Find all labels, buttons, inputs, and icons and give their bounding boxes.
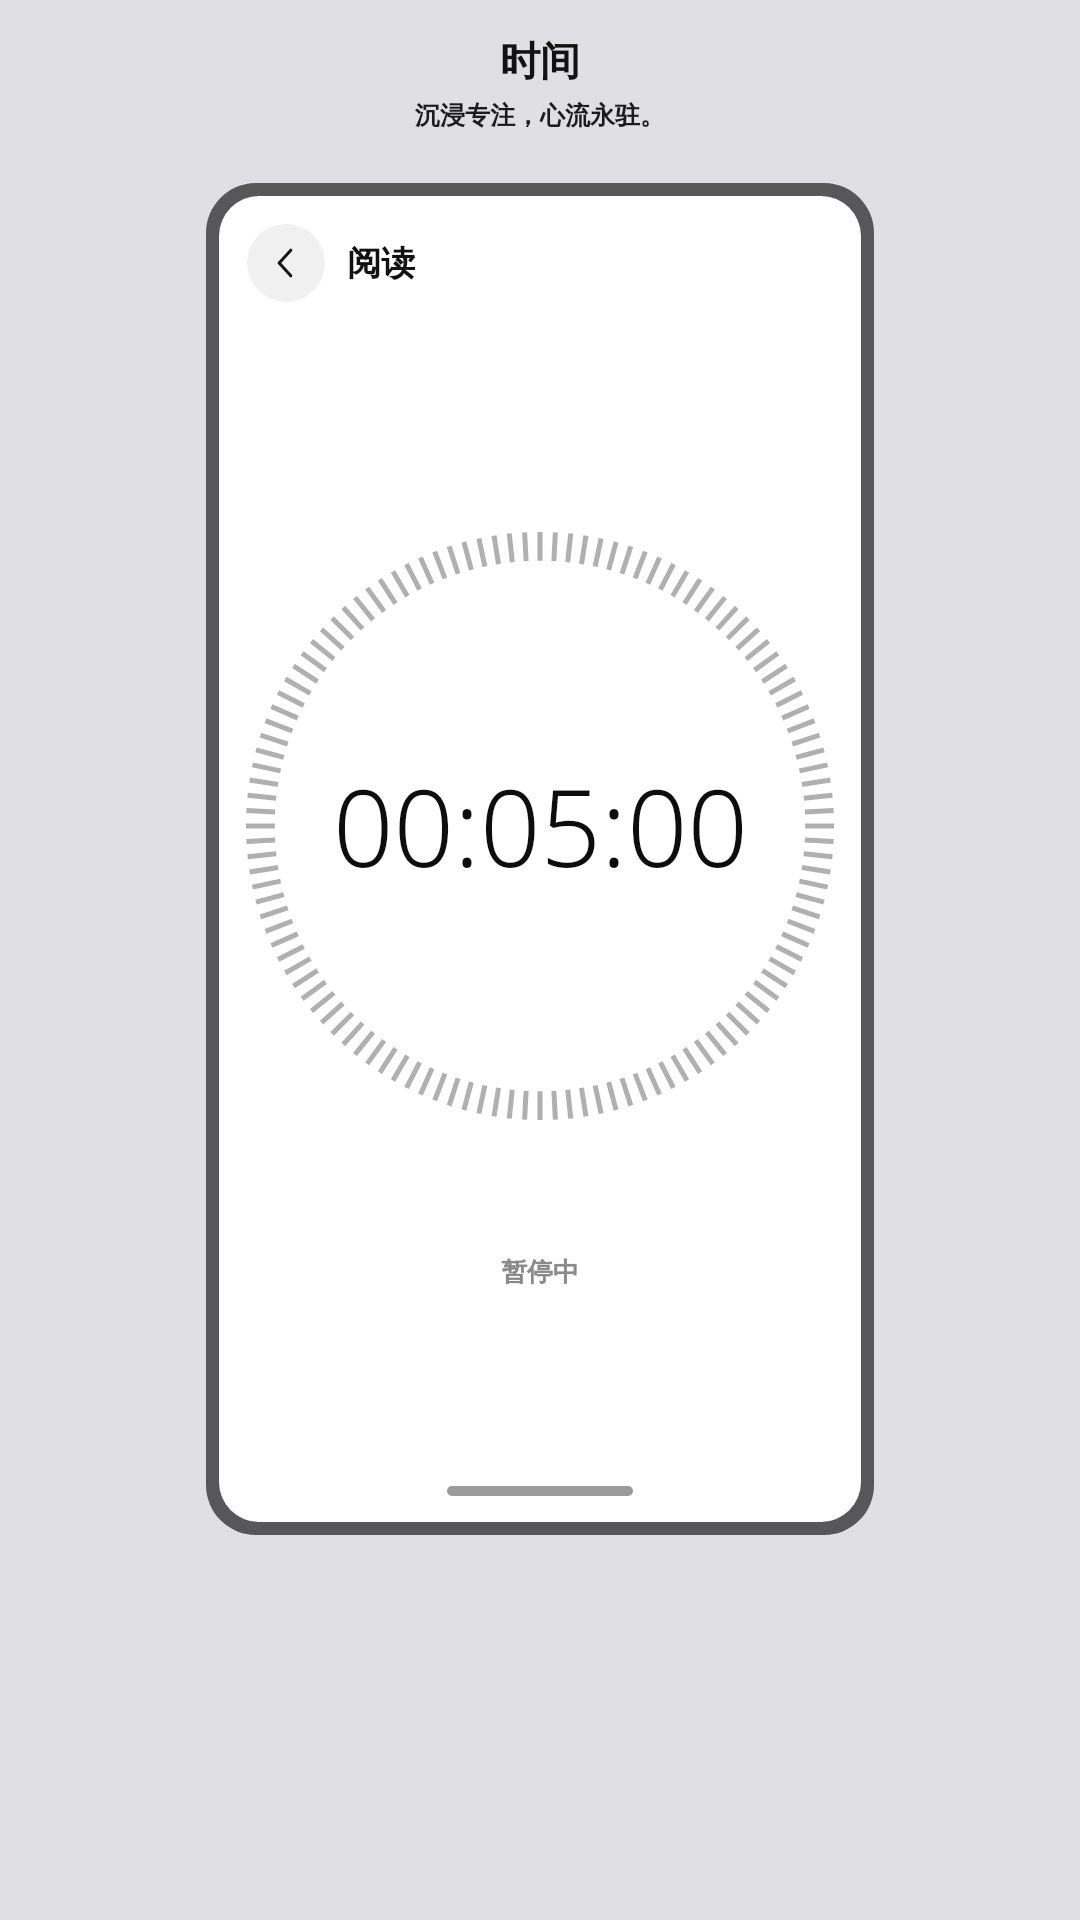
staticText: 时间 [500, 36, 580, 86]
staticText: 阅读 [347, 242, 415, 285]
button[interactable]: Back [247, 224, 325, 302]
staticText: 暂停中 [501, 1256, 579, 1289]
staticText: 沉浸专注，心流永驻。 [415, 100, 665, 131]
staticText: 00:05:00 [333, 754, 748, 898]
